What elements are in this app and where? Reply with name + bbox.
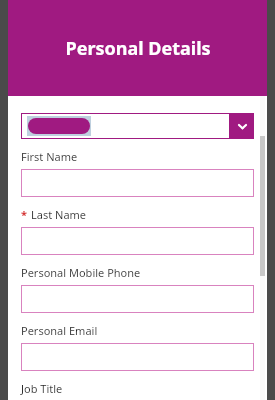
staticText: First Name (21, 149, 78, 164)
staticText: Job Title (21, 381, 63, 396)
staticText: Personal Mobile Phone (21, 265, 141, 280)
button[interactable] (21, 227, 254, 255)
button[interactable]: Open dropdown (21, 113, 254, 139)
button[interactable] (21, 285, 254, 313)
button[interactable] (21, 343, 254, 371)
staticText: * (21, 207, 27, 222)
button[interactable]: Open dropdown (230, 113, 254, 139)
staticText: Personal Details (65, 36, 211, 61)
button[interactable] (21, 169, 254, 197)
staticText: Personal Email (21, 323, 98, 338)
staticText: Last Name (31, 207, 87, 222)
